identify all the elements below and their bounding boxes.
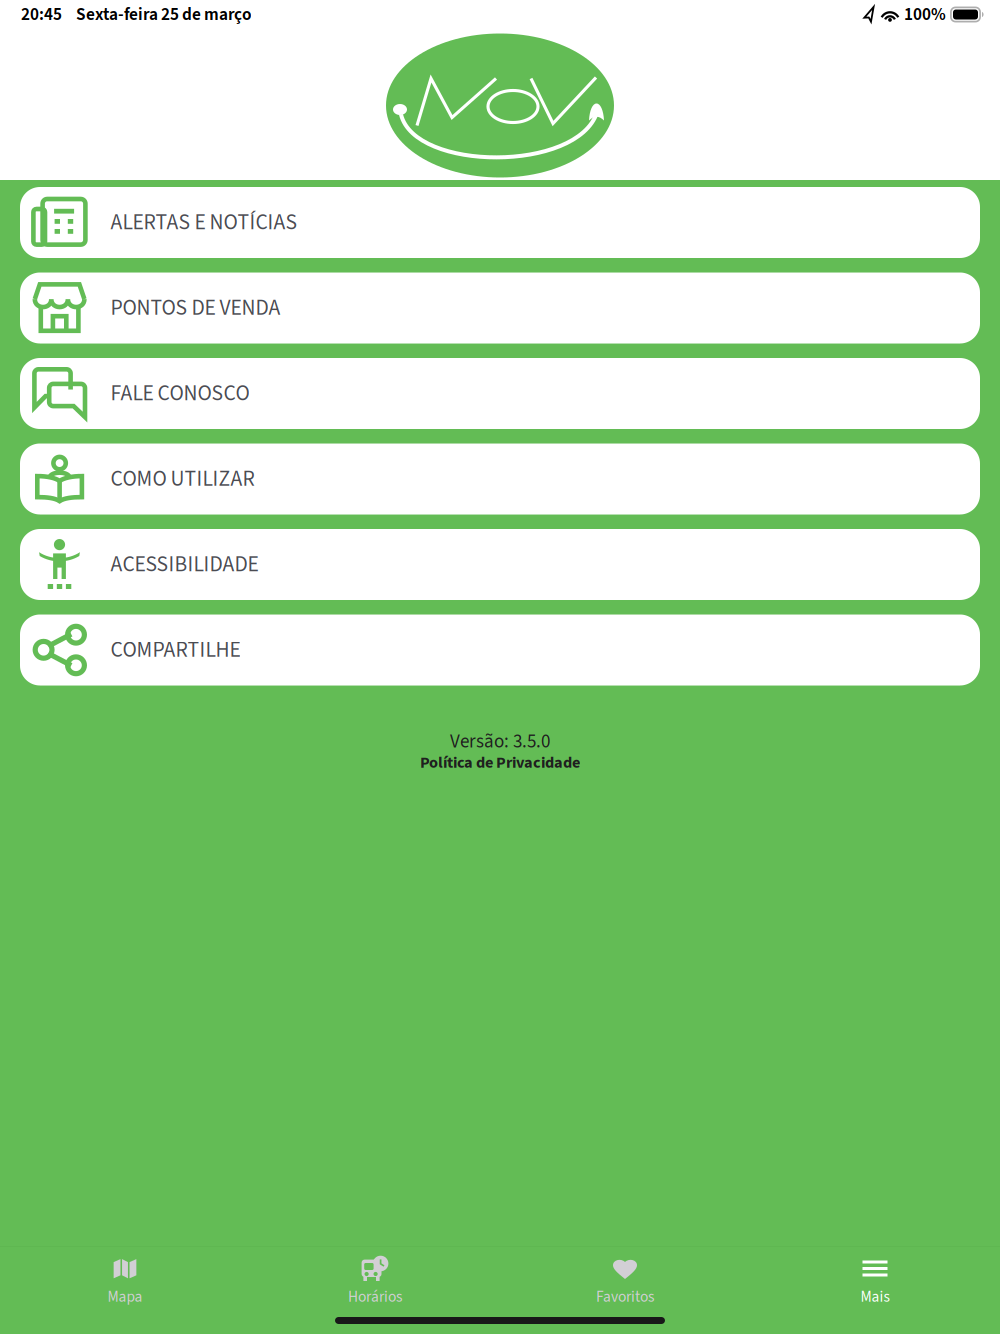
- staticText: ACESSIBILIDADE: [110, 549, 258, 580]
- staticText: Política de Privacidade: [420, 751, 580, 774]
- button[interactable]: PONTOS DE VENDA: [20, 272, 980, 343]
- staticText: Favoritos: [596, 1286, 654, 1308]
- button[interactable]: Mais: [750, 1247, 1000, 1311]
- staticText: Sexta-feira 25 de março: [76, 2, 252, 27]
- staticText: ALERTAS E NOTÍCIAS: [110, 207, 297, 238]
- staticText: COMO UTILIZAR: [110, 464, 254, 494]
- staticText: 100%: [904, 2, 946, 27]
- staticText: 20:45: [21, 2, 62, 27]
- button[interactable]: Política de Privacidade: [420, 751, 580, 774]
- button[interactable]: COMO UTILIZAR: [20, 443, 980, 514]
- staticText: Horários: [348, 1286, 402, 1308]
- button[interactable]: Mapa: [0, 1247, 250, 1311]
- button[interactable]: FALE CONOSCO: [20, 358, 980, 429]
- staticText: PONTOS DE VENDA: [110, 293, 280, 323]
- staticText: Versão: 3.5.0: [450, 728, 550, 755]
- button[interactable]: Favoritos: [500, 1247, 750, 1311]
- staticText: Mais: [860, 1286, 889, 1308]
- button[interactable]: COMPARTILHE: [20, 614, 980, 685]
- button[interactable]: Horários: [250, 1247, 500, 1311]
- button[interactable]: ACESSIBILIDADE: [20, 529, 980, 600]
- button[interactable]: ALERTAS E NOTÍCIAS: [20, 187, 980, 258]
- staticText: FALE CONOSCO: [110, 378, 249, 409]
- staticText: COMPARTILHE: [110, 635, 240, 665]
- staticText: Mapa: [107, 1286, 142, 1308]
